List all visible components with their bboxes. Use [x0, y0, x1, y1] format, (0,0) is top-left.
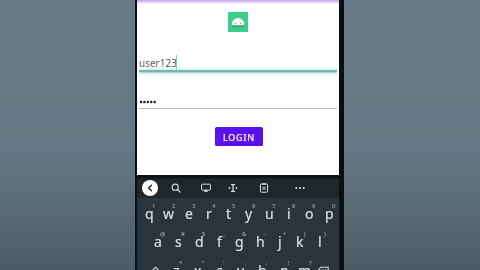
button[interactable]: 1: [139, 199, 159, 225]
staticText: *: [179, 259, 183, 267]
button[interactable]: ": [187, 256, 209, 270]
staticText: ;: [266, 259, 268, 267]
staticText: n: [280, 261, 289, 270]
staticText: _: [223, 230, 226, 238]
staticText: r: [206, 204, 212, 223]
button[interactable]: Clipboard: [255, 179, 273, 197]
staticText: x: [194, 261, 202, 270]
staticText: z: [173, 261, 180, 270]
button[interactable]: ;: [251, 256, 273, 270]
staticText: a: [154, 232, 162, 251]
button[interactable]: 5: [219, 199, 239, 225]
button[interactable]: !: [273, 256, 295, 270]
staticText: LOGIN: [223, 131, 255, 143]
staticText: i: [287, 204, 291, 223]
staticText: &: [242, 230, 247, 238]
staticText: k: [296, 232, 304, 251]
staticText: p: [325, 204, 334, 223]
staticText: -: [264, 230, 266, 238]
button[interactable]: Stickers: [197, 179, 215, 197]
button[interactable]: *: [165, 256, 187, 270]
staticText: ): [324, 230, 326, 238]
staticText: e: [185, 204, 193, 223]
staticText: v: [237, 261, 245, 270]
staticText: @: [160, 230, 166, 238]
staticText: (: [304, 230, 306, 238]
button[interactable]: #: [168, 227, 188, 253]
button[interactable]: _: [209, 227, 229, 253]
staticText: 3: [192, 202, 196, 210]
button[interactable]: 4: [199, 199, 219, 225]
button[interactable]: 7: [259, 199, 279, 225]
staticText: c: [216, 261, 223, 270]
button[interactable]: 2: [159, 199, 179, 225]
button[interactable]: 6: [239, 199, 259, 225]
button[interactable]: :: [230, 256, 252, 270]
staticText: ': [223, 259, 225, 267]
button[interactable]: 3: [179, 199, 199, 225]
staticText: l: [318, 232, 322, 251]
staticText: 2: [172, 202, 176, 210]
staticText: o: [305, 204, 314, 223]
staticText: 9: [312, 202, 316, 210]
button[interactable]: +: [270, 227, 290, 253]
staticText: 7: [272, 202, 276, 210]
button[interactable]: 0: [319, 199, 339, 225]
staticText: ?: [309, 259, 312, 267]
staticText: u: [265, 204, 274, 223]
button[interactable]: (: [290, 227, 310, 253]
button[interactable]: Search: [167, 179, 185, 197]
staticText: 6: [252, 202, 256, 210]
staticText: w: [163, 204, 175, 223]
staticText: 0: [332, 202, 336, 210]
button[interactable]: ): [310, 227, 330, 253]
button[interactable]: 9: [299, 199, 319, 225]
button[interactable]: Backspace: [311, 258, 335, 270]
button[interactable]: ?: [294, 256, 316, 270]
button[interactable]: LOGIN: [215, 127, 263, 146]
staticText: 4: [212, 202, 216, 210]
staticText: h: [256, 232, 265, 251]
staticText: ": [202, 259, 205, 267]
button[interactable]: $: [189, 227, 209, 253]
button[interactable]: Shift: [143, 258, 167, 270]
button[interactable]: More options: [291, 179, 309, 197]
staticText: 8: [292, 202, 296, 210]
button[interactable]: @: [148, 227, 168, 253]
staticText: q: [145, 204, 154, 223]
staticText: m: [298, 261, 312, 270]
staticText: 5: [232, 202, 236, 210]
button[interactable]: 8: [279, 199, 299, 225]
staticText: !: [288, 259, 290, 267]
button[interactable]: Back: [142, 180, 158, 196]
staticText: $: [202, 230, 206, 238]
staticText: 1: [152, 202, 156, 210]
button[interactable]: ': [208, 256, 230, 270]
staticText: d: [195, 232, 204, 251]
staticText: y: [245, 204, 253, 223]
staticText: s: [175, 232, 182, 251]
staticText: :: [245, 259, 247, 267]
button[interactable]: &: [229, 227, 249, 253]
button[interactable]: -: [250, 227, 270, 253]
staticText: j: [278, 232, 282, 251]
staticText: #: [181, 230, 185, 238]
button[interactable]: GIF: [224, 179, 242, 197]
staticText: f: [217, 232, 222, 251]
button[interactable]: App logo: [228, 12, 248, 32]
staticText: +: [283, 230, 287, 238]
staticText: t: [226, 204, 232, 223]
staticText: g: [235, 232, 244, 251]
staticText: user123: [139, 56, 177, 70]
staticText: b: [258, 261, 267, 270]
